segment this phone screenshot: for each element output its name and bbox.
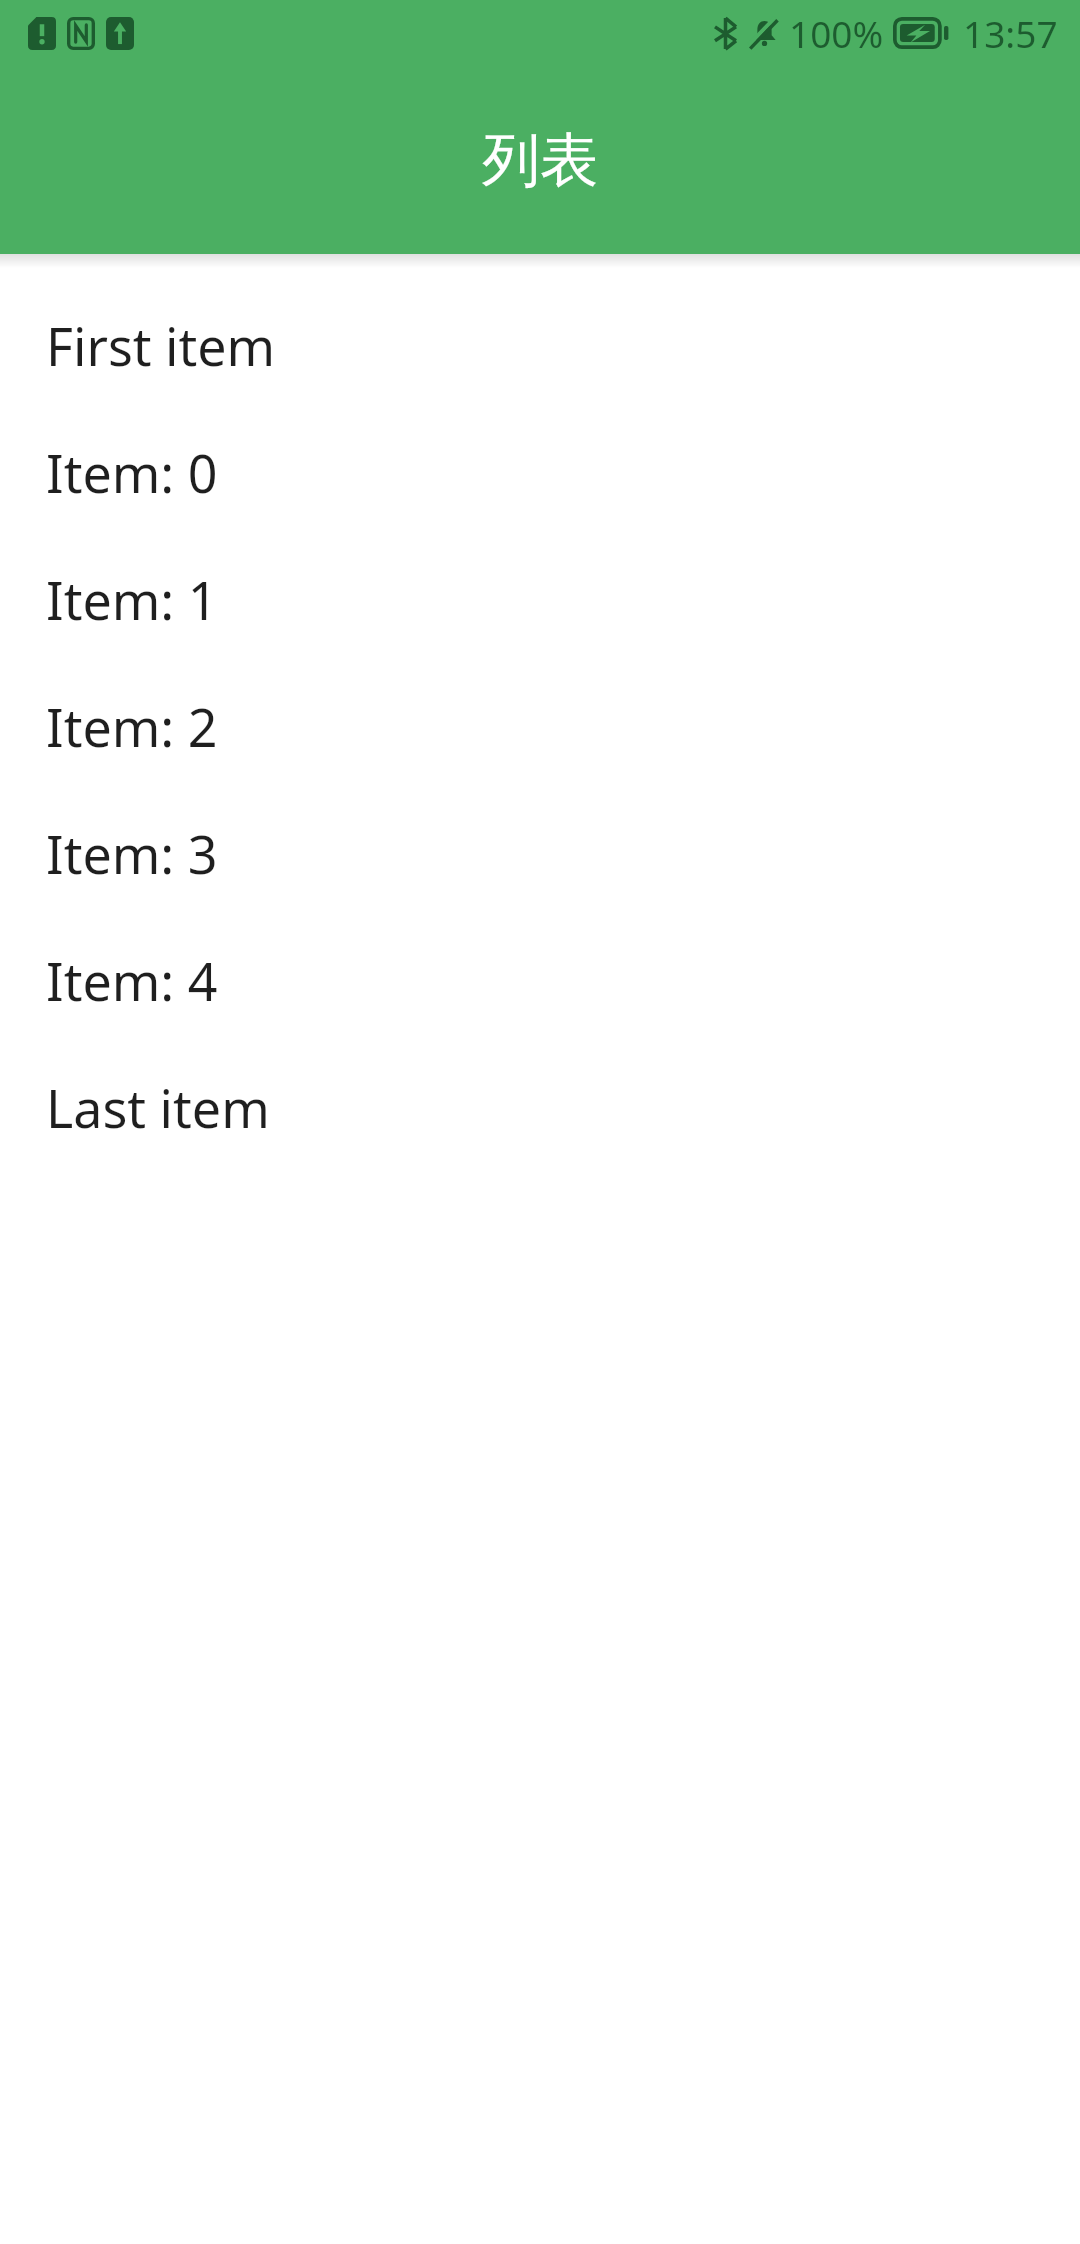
other: Silent mode [749,17,780,50]
button[interactable]: First item [0,282,1080,409]
staticText: 13:57 [963,8,1058,58]
staticText: Item: 0 [46,437,218,508]
staticText: Item: 2 [46,691,218,762]
staticText: 100% [789,8,884,58]
staticText: Last item [46,1072,270,1143]
other: Bluetooth on [713,17,738,50]
staticText: Item: 4 [46,945,218,1016]
other: NFC enabled [67,17,95,50]
staticText: Item: 1 [46,564,218,635]
staticText: 列表 [482,124,598,197]
button[interactable]: Item: 4 [0,917,1080,1044]
other: SIM card alert [28,17,56,50]
button[interactable]: Item: 0 [0,409,1080,536]
button[interactable]: Item: 2 [0,663,1080,790]
staticText: First item [46,310,276,381]
staticText: Item: 3 [46,818,218,889]
button[interactable]: Item: 1 [0,536,1080,663]
button[interactable]: Last item [0,1044,1080,1171]
other: Upload [106,17,134,50]
other: Battery charging [893,17,951,49]
button[interactable]: Item: 3 [0,790,1080,917]
